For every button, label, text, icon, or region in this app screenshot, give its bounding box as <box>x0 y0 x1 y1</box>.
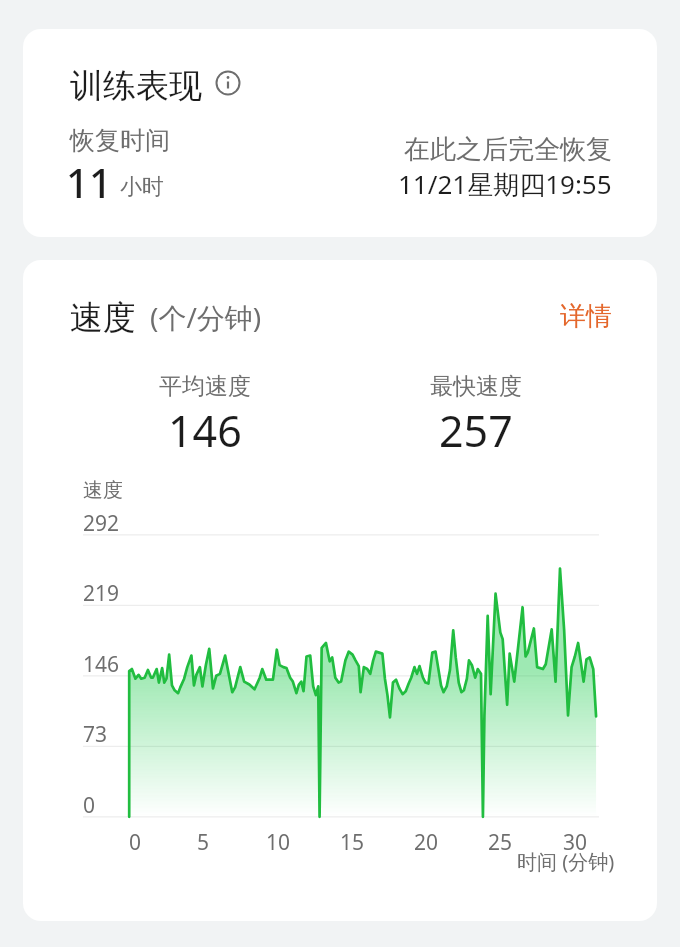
staticText: 25 <box>488 828 513 857</box>
staticText: 训练表现 <box>70 65 202 107</box>
button[interactable]: 训练表现 <box>23 29 657 237</box>
staticText: 恢复时间 <box>70 125 170 156</box>
staticText: 11/21星期四19:55 <box>398 166 612 202</box>
staticText: 146 <box>83 650 120 679</box>
staticText: 在此之后完全恢复 <box>404 133 612 166</box>
staticText: 20 <box>414 828 439 857</box>
staticText: (个/分钟) <box>150 298 262 336</box>
staticText: 219 <box>83 579 120 608</box>
staticText: 292 <box>83 509 120 538</box>
staticText: 最快速度 <box>430 372 522 401</box>
staticText: 30 <box>563 828 588 857</box>
staticText: 速度 <box>83 478 123 503</box>
staticText: 平均速度 <box>159 372 251 401</box>
staticText: 详情 <box>560 300 612 333</box>
staticText: 11 <box>66 155 112 209</box>
button[interactable]: 详情 <box>560 300 612 333</box>
staticText: 时间 (分钟) <box>517 848 615 875</box>
staticText: 0 <box>129 828 142 857</box>
staticText: 15 <box>340 828 365 857</box>
staticText: 10 <box>266 828 291 857</box>
staticText: 5 <box>197 828 210 857</box>
staticText: 146 <box>168 401 242 460</box>
staticText: 73 <box>83 720 108 749</box>
button[interactable]: Info <box>215 70 241 96</box>
staticText: 0 <box>83 791 96 820</box>
button[interactable]: 速度 <box>23 260 657 921</box>
staticText: 速度 <box>70 297 136 339</box>
staticText: 小时 <box>120 173 164 201</box>
staticText: 257 <box>439 401 513 460</box>
